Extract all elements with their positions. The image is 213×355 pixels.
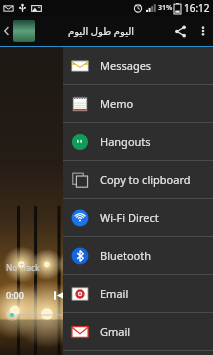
button[interactable]: Back <box>0 16 13 46</box>
button[interactable]: Memo <box>63 85 213 122</box>
button[interactable]: Hangouts <box>63 123 213 160</box>
staticText: Email <box>100 286 129 301</box>
staticText: Hangouts <box>100 134 151 149</box>
staticText: Wi-Fi Direct <box>100 210 159 225</box>
staticText: Bluetooth <box>100 248 152 263</box>
staticText: Memo <box>100 96 134 111</box>
staticText: 0:00 <box>6 289 24 301</box>
button[interactable]: Messages <box>63 47 213 84</box>
button[interactable]: Email <box>63 275 213 312</box>
button[interactable] <box>13 20 35 42</box>
button[interactable]: More options <box>193 16 213 46</box>
staticText: 31% <box>158 3 173 13</box>
button[interactable]: Gmail <box>63 313 213 350</box>
staticText: 16:12 <box>184 1 210 15</box>
button[interactable]: Copy to clipboard <box>63 161 213 198</box>
staticText: Messages <box>100 58 152 73</box>
staticText: اليوم طول اليوم <box>68 24 134 38</box>
staticText: Copy to clipboard <box>100 172 191 187</box>
staticText: Gmail <box>100 324 131 339</box>
button[interactable]: Previous <box>52 288 66 302</box>
button[interactable]: Bluetooth <box>63 237 213 274</box>
staticText: No Track <box>6 262 40 273</box>
button[interactable]: Wi-Fi Direct <box>63 199 213 236</box>
button[interactable]: Share <box>167 16 193 46</box>
